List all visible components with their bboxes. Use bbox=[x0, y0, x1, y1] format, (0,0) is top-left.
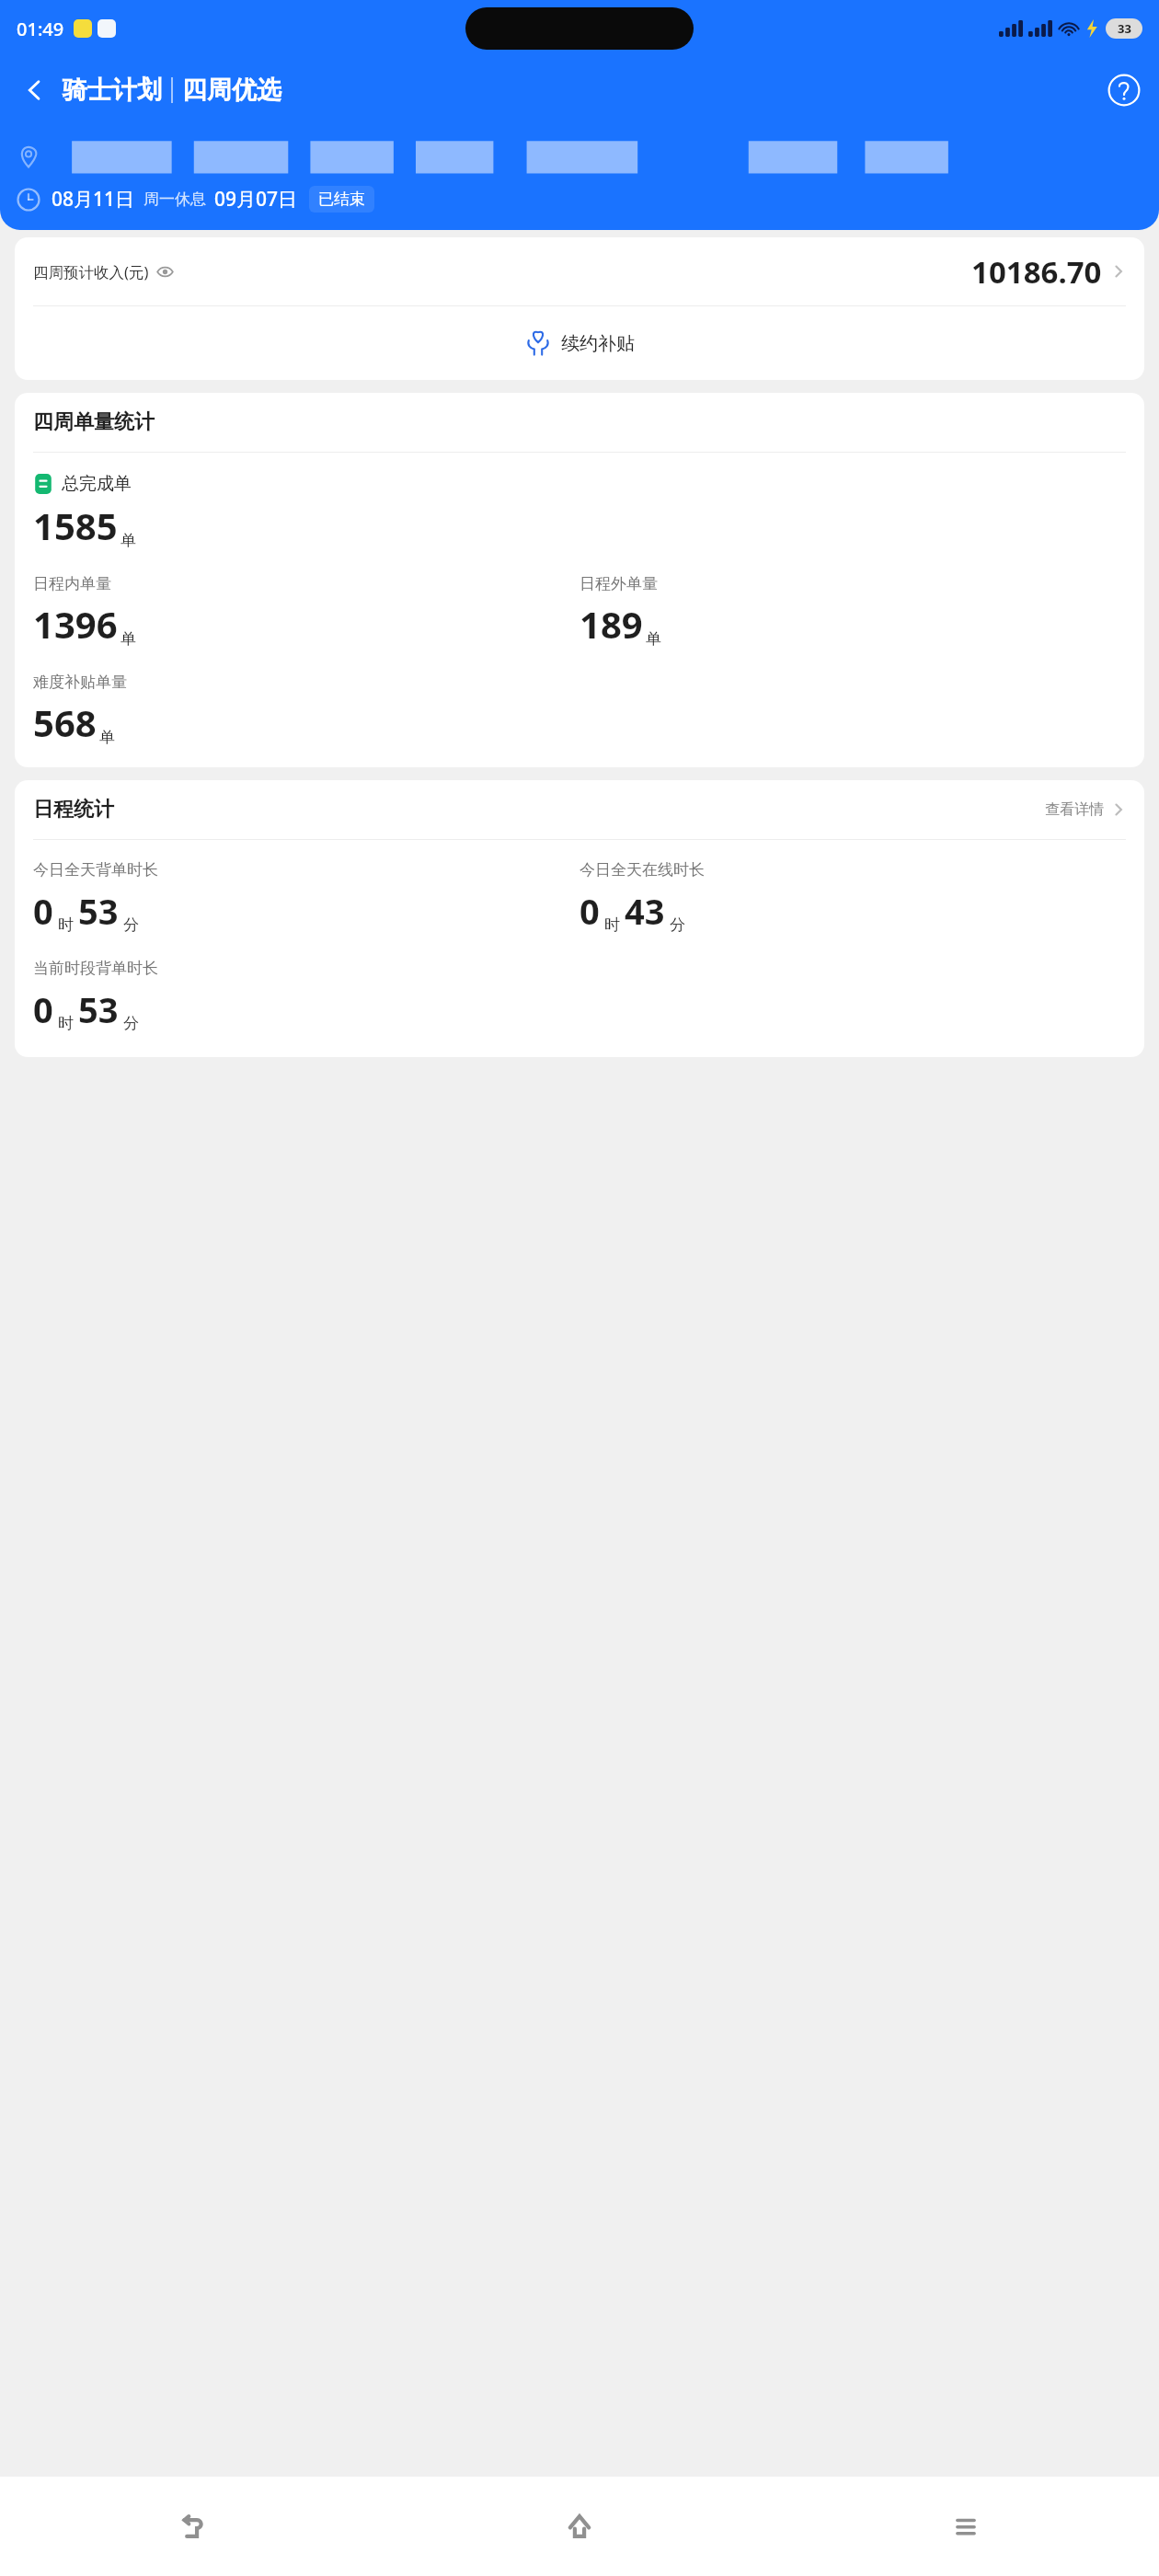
button[interactable]: Recent apps bbox=[773, 2477, 1159, 2576]
staticText: 周一休息 bbox=[143, 190, 206, 209]
staticText: 分 bbox=[123, 1014, 139, 1033]
staticText: 0 bbox=[33, 985, 53, 1033]
staticText: 日程内单量 bbox=[33, 574, 111, 593]
staticText: 单 bbox=[99, 728, 115, 747]
staticText: 单 bbox=[646, 629, 661, 649]
button[interactable]: Back bbox=[15, 70, 55, 110]
staticText: 08月11日 bbox=[52, 186, 135, 213]
staticText: 0 bbox=[33, 887, 53, 935]
staticText: 189 bbox=[579, 599, 643, 649]
staticText: 1396 bbox=[33, 599, 118, 649]
staticText: 单 bbox=[120, 629, 136, 649]
staticText: 分 bbox=[670, 915, 685, 935]
staticText: 续约补贴 bbox=[561, 332, 635, 355]
staticText: 分 bbox=[123, 915, 139, 935]
staticText: 日程统计 bbox=[33, 797, 114, 822]
staticText: 时 bbox=[58, 1014, 74, 1033]
button[interactable]: 四周预计收入(元) bbox=[15, 237, 1144, 305]
staticText: 总完成单 bbox=[62, 473, 132, 495]
staticText: 时 bbox=[604, 915, 620, 935]
staticText: 四周单量统计 bbox=[33, 409, 155, 435]
staticText: 今日全天在线时长 bbox=[579, 860, 705, 880]
staticText: 四周优选 bbox=[182, 75, 281, 106]
staticText: 568 bbox=[33, 697, 97, 747]
staticText: 1585 bbox=[33, 500, 118, 550]
button[interactable]: 续约补贴 bbox=[15, 306, 1144, 380]
staticText: 33 bbox=[1118, 20, 1131, 37]
staticText: 53 bbox=[78, 887, 119, 935]
staticText: 当前时段背单时长 bbox=[33, 959, 158, 978]
staticText: 四周预计收入(元) bbox=[33, 261, 149, 282]
button[interactable]: 查看详情 bbox=[1045, 800, 1126, 819]
button[interactable]: Home bbox=[386, 2477, 773, 2576]
staticText: 日程外单量 bbox=[579, 574, 658, 593]
button[interactable]: Back bbox=[0, 2477, 386, 2576]
staticText: 骑士计划 bbox=[63, 75, 162, 106]
staticText: 已结束 bbox=[318, 190, 365, 209]
staticText: 10186.70 bbox=[971, 251, 1102, 293]
staticText: 0 bbox=[579, 887, 600, 935]
staticText: 43 bbox=[625, 887, 665, 935]
staticText: 今日全天背单时长 bbox=[33, 860, 158, 880]
staticText: 难度补贴单量 bbox=[33, 673, 127, 692]
button[interactable]: Help bbox=[1104, 70, 1144, 110]
staticText: 单 bbox=[120, 531, 136, 550]
staticText: 01:49 bbox=[17, 17, 64, 41]
staticText: 时 bbox=[58, 915, 74, 935]
staticText: 53 bbox=[78, 985, 119, 1033]
staticText: 查看详情 bbox=[1045, 800, 1104, 819]
staticText: 09月07日 bbox=[214, 186, 298, 213]
